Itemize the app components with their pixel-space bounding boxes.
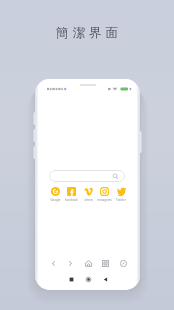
button[interactable] [49,170,125,182]
button[interactable]: Forward [64,257,76,269]
button[interactable]: Google [47,187,63,202]
button[interactable]: Home [82,257,94,269]
staticText: 簡潔界面 [54,25,120,41]
button[interactable]: Tabs [99,257,111,269]
button[interactable]: Back [100,274,110,284]
staticText: vimeo [84,198,93,202]
button[interactable]: instagram [96,187,112,202]
button[interactable]: Recents [66,274,76,284]
staticText: Twitter [116,198,126,202]
button[interactable]: Twitter [113,187,129,202]
button[interactable]: vimeo [80,187,96,202]
staticText: Google [50,198,61,202]
button[interactable]: Back [47,257,59,269]
staticText: facebook [65,198,78,202]
button[interactable]: Menu [117,257,129,269]
button[interactable]: facebook [63,187,79,202]
button[interactable]: Home [83,274,93,284]
staticText: instagram [97,198,112,202]
